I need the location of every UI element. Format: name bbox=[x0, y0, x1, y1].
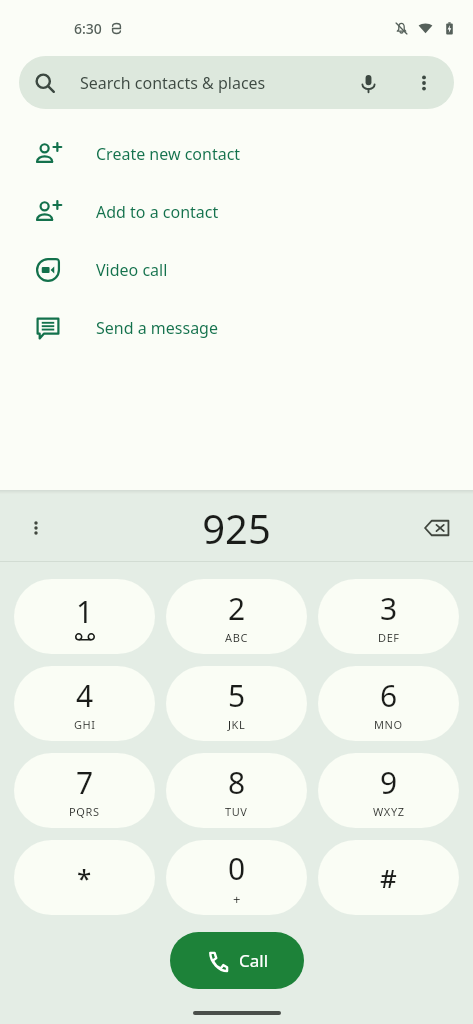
staticText: Call bbox=[239, 949, 269, 972]
staticText: 5 bbox=[228, 675, 246, 716]
staticText: 2 bbox=[228, 588, 246, 629]
button[interactable]: Call bbox=[170, 932, 304, 989]
staticText: 7 bbox=[76, 762, 94, 803]
staticText: Send a message bbox=[96, 317, 218, 339]
button[interactable]: # bbox=[318, 840, 459, 915]
button[interactable]: More options bbox=[404, 63, 444, 103]
staticText: Add to a contact bbox=[96, 201, 219, 223]
button[interactable]: 2 bbox=[166, 579, 307, 654]
button[interactable]: 5 bbox=[166, 666, 307, 741]
staticText: 4 bbox=[76, 675, 94, 716]
button[interactable]: 4 bbox=[14, 666, 155, 741]
staticText: 0 bbox=[228, 848, 246, 889]
staticText: GHI bbox=[74, 717, 96, 732]
button[interactable]: Send a message bbox=[0, 299, 473, 357]
button[interactable]: 9 bbox=[318, 753, 459, 828]
staticText: 9 bbox=[380, 762, 398, 803]
staticText: + bbox=[233, 890, 242, 908]
button[interactable]: * bbox=[14, 840, 155, 915]
staticText: * bbox=[77, 860, 92, 895]
button[interactable]: Create new contact bbox=[0, 125, 473, 183]
staticText: Video call bbox=[96, 259, 168, 281]
button[interactable]: 3 bbox=[318, 579, 459, 654]
staticText: # bbox=[380, 860, 397, 895]
staticText: 6 bbox=[380, 675, 398, 716]
button[interactable]: 6 bbox=[318, 666, 459, 741]
staticText: PQRS bbox=[69, 804, 100, 819]
staticText: 3 bbox=[380, 588, 398, 629]
button[interactable]: 1 bbox=[14, 579, 155, 654]
staticText: JKL bbox=[228, 717, 246, 732]
staticText: 925 bbox=[202, 501, 271, 555]
button[interactable]: Add to a contact bbox=[0, 183, 473, 241]
button[interactable]: Backspace bbox=[415, 506, 459, 550]
button[interactable]: Dialpad options bbox=[14, 506, 58, 550]
staticText: TUV bbox=[225, 804, 248, 819]
staticText: MNO bbox=[374, 717, 403, 732]
staticText: DEF bbox=[378, 630, 400, 645]
staticText: Create new contact bbox=[96, 143, 241, 165]
staticText: ABC bbox=[225, 630, 248, 645]
staticText: 8 bbox=[228, 762, 246, 803]
button[interactable]: 0 bbox=[166, 840, 307, 915]
staticText: Search contacts & places bbox=[80, 72, 266, 94]
button[interactable]: Video call bbox=[0, 241, 473, 299]
button[interactable]: Search contacts & places bbox=[19, 56, 454, 109]
button[interactable]: 8 bbox=[166, 753, 307, 828]
staticText: 1 bbox=[76, 591, 94, 632]
button[interactable]: 7 bbox=[14, 753, 155, 828]
staticText: WXYZ bbox=[373, 804, 405, 819]
staticText: 6:30 bbox=[74, 19, 102, 38]
button[interactable]: Voice search bbox=[348, 63, 388, 103]
